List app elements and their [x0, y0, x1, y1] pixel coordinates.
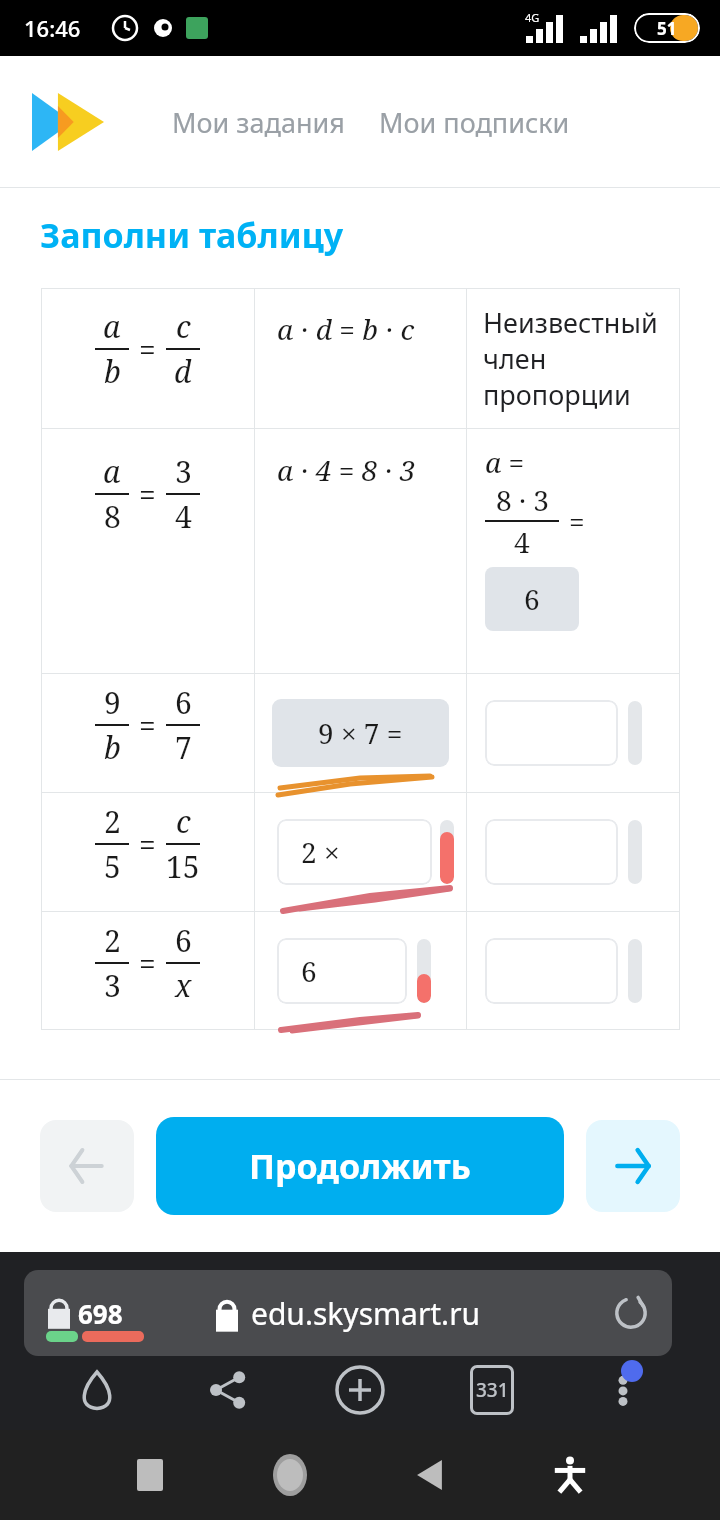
staticText: Мои подписки: [379, 104, 570, 141]
staticText: a: [103, 451, 121, 492]
staticText: Заполни таблицу: [40, 212, 344, 258]
staticText: b: [104, 351, 121, 392]
staticText: =: [139, 705, 156, 746]
staticText: d: [174, 351, 192, 392]
button[interactable]: Назад: [40, 1120, 134, 1212]
staticText: =: [139, 943, 156, 984]
staticText: 51: [657, 17, 677, 40]
staticText: 15: [166, 846, 200, 887]
button[interactable]: Специальные возможности: [540, 1445, 600, 1505]
staticText: c: [176, 306, 191, 347]
staticText: 9 × 7 =: [318, 714, 403, 752]
button[interactable]: 9 × 7 =: [272, 699, 449, 767]
staticText: 331: [476, 1377, 509, 1403]
staticText: Мои задания: [172, 104, 345, 141]
staticText: =: [569, 502, 585, 540]
staticText: 6: [175, 920, 192, 961]
button[interactable]: Вкладки: [457, 1355, 527, 1425]
button[interactable]: Мои задания: [168, 96, 349, 149]
button[interactable]: Назад: [400, 1445, 460, 1505]
button[interactable]: Продолжить: [156, 1117, 564, 1215]
button[interactable]: 6: [277, 938, 407, 1004]
staticText: 16:46: [24, 13, 81, 43]
staticText: a: [103, 306, 121, 347]
staticText: 6: [524, 580, 540, 618]
button[interactable]: [485, 938, 618, 1004]
staticText: 2: [104, 801, 121, 842]
staticText: 4: [514, 523, 530, 561]
button[interactable]: Недавние: [120, 1445, 180, 1505]
button[interactable]: Поделиться: [193, 1355, 263, 1425]
staticText: =: [139, 329, 156, 370]
button[interactable]: Домой: [260, 1445, 320, 1505]
staticText: 4: [175, 496, 192, 537]
button[interactable]: Главная: [62, 1355, 132, 1425]
button[interactable]: Меню: [588, 1355, 658, 1425]
button[interactable]: Вперёд: [586, 1120, 680, 1212]
staticText: 6: [301, 952, 317, 990]
button[interactable]: 2 ×: [277, 819, 432, 885]
staticText: 9: [104, 682, 121, 723]
staticText: 7: [175, 727, 192, 768]
button[interactable]: Мои подписки: [375, 96, 574, 149]
button[interactable]: [485, 700, 618, 766]
staticText: c: [176, 801, 191, 842]
button[interactable]: [485, 819, 618, 885]
staticText: 8 · 3: [496, 481, 549, 519]
button[interactable]: Новая вкладка: [325, 1355, 395, 1425]
other: Обновить: [614, 1296, 648, 1330]
staticText: 2: [104, 920, 121, 961]
staticText: 3: [104, 965, 121, 1006]
staticText: 3: [175, 451, 192, 492]
staticText: Продолжить: [249, 1143, 471, 1189]
staticText: =: [139, 824, 156, 865]
staticText: 698: [78, 1296, 123, 1331]
staticText: 2 ×: [301, 833, 340, 871]
staticText: Неизвестный член пропорции: [483, 304, 676, 413]
button[interactable]: 6: [485, 567, 579, 631]
staticText: =: [139, 474, 156, 515]
staticText: 5: [104, 846, 121, 887]
staticText: edu.skysmart.ru: [251, 1293, 481, 1334]
staticText: 6: [175, 682, 192, 723]
staticText: 8: [104, 496, 121, 537]
staticText: b: [104, 727, 121, 768]
staticText: a · 4 = 8 · 3: [277, 451, 416, 489]
staticText: x: [175, 965, 192, 1006]
staticText: 4G: [525, 10, 540, 25]
staticText: a · d = b · c: [277, 310, 415, 348]
staticText: a =: [485, 443, 525, 481]
button[interactable]: 698: [24, 1270, 672, 1356]
